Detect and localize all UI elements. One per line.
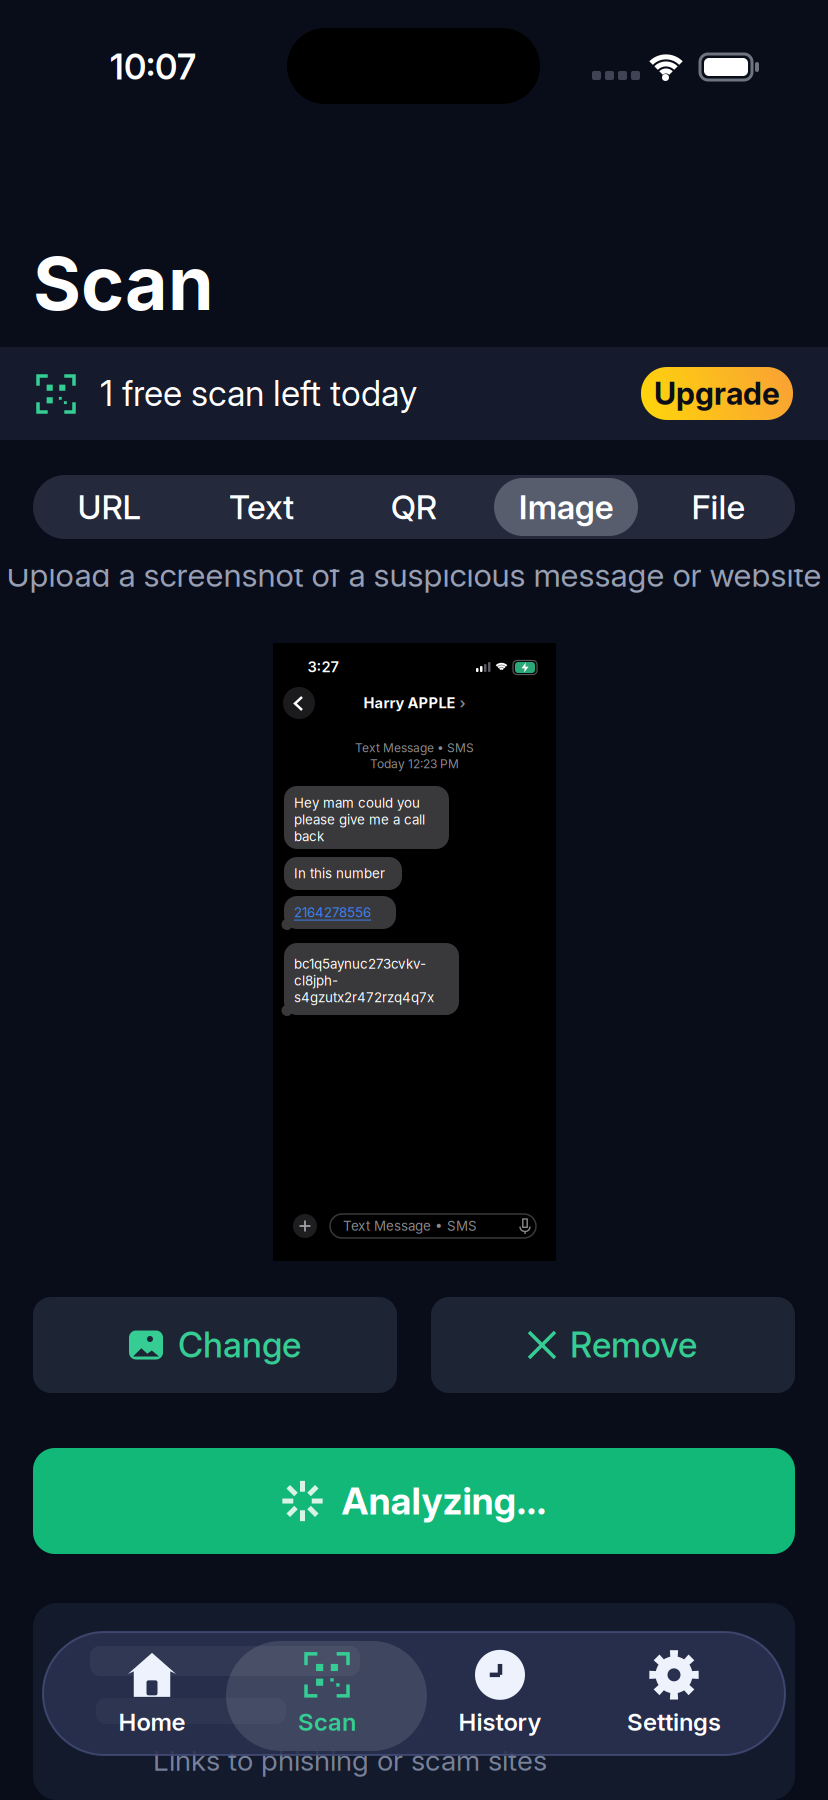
staticText: Harry APPLE bbox=[363, 694, 455, 712]
staticText: Image bbox=[519, 487, 614, 527]
button[interactable]: Analyzing... bbox=[33, 1448, 795, 1554]
staticText: QR bbox=[391, 487, 437, 527]
staticText: 3:27 bbox=[307, 658, 338, 676]
staticText: Home bbox=[118, 1708, 185, 1736]
button[interactable]: Remove bbox=[431, 1297, 795, 1393]
staticText: s4gzutx2r472rzq4q7x bbox=[294, 989, 434, 1005]
button[interactable]: Scan bbox=[237, 1635, 417, 1753]
staticText: Hey mam could you bbox=[294, 795, 420, 811]
staticText: back bbox=[294, 828, 324, 844]
button[interactable]: Text bbox=[185, 475, 337, 539]
staticText: Analyzing... bbox=[341, 1479, 546, 1523]
staticText: Text Message • SMS bbox=[355, 741, 474, 755]
staticText: In this number bbox=[294, 866, 385, 881]
button[interactable]: File bbox=[643, 475, 795, 539]
staticText: Today 12:23 PM bbox=[370, 757, 459, 771]
staticText: History bbox=[458, 1708, 541, 1736]
staticText: bc1q5aynuc273cvkv- bbox=[294, 956, 426, 972]
staticText: Remove bbox=[570, 1325, 697, 1365]
staticText: › bbox=[459, 694, 465, 712]
staticText: Upload a screenshot of a suspicious mess… bbox=[6, 556, 821, 594]
button[interactable]: QR bbox=[338, 475, 490, 539]
button[interactable]: History bbox=[410, 1635, 590, 1753]
staticText: Scan bbox=[33, 240, 214, 326]
staticText: 10:07 bbox=[110, 47, 196, 87]
button[interactable]: Change bbox=[33, 1297, 397, 1393]
staticText: File bbox=[692, 487, 746, 527]
staticText: 1 free scan left today bbox=[100, 373, 417, 414]
button[interactable]: Home bbox=[62, 1635, 242, 1753]
staticText: Settings bbox=[627, 1708, 721, 1736]
staticText: URL bbox=[77, 487, 140, 527]
staticText: please give me a call bbox=[294, 812, 425, 827]
staticText: Text bbox=[229, 487, 294, 527]
staticText: Text Message • SMS bbox=[343, 1218, 477, 1234]
staticText: 2164278556 bbox=[294, 905, 371, 920]
staticText: Scan bbox=[298, 1708, 356, 1736]
button[interactable]: Settings bbox=[584, 1635, 764, 1753]
button[interactable]: Upgrade bbox=[641, 367, 793, 420]
button[interactable]: Image bbox=[490, 475, 642, 539]
button[interactable]: URL bbox=[33, 475, 185, 539]
staticText: cl8jph- bbox=[294, 973, 338, 988]
staticText: Change bbox=[178, 1325, 301, 1365]
staticText: Links to phishing or scam sites bbox=[153, 1744, 547, 1777]
staticText: Upgrade bbox=[654, 375, 780, 412]
